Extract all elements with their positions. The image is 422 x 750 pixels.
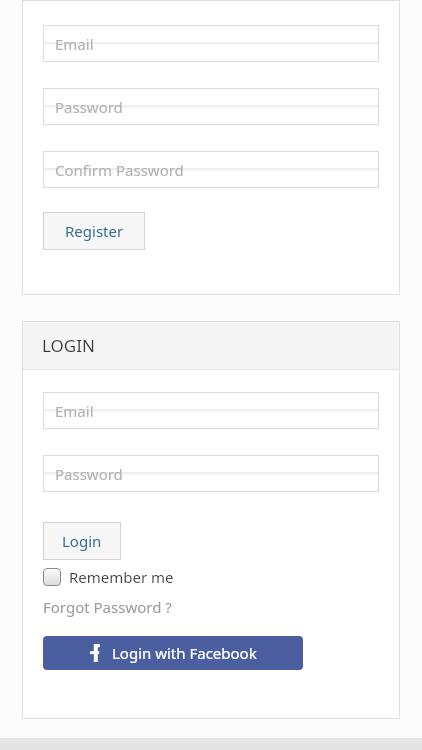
button[interactable]: Forgot Password ? <box>43 597 172 617</box>
staticText: Forgot Password ? <box>43 597 172 617</box>
button[interactable]: Register <box>43 212 145 250</box>
staticText: Confirm Password <box>55 160 184 180</box>
button[interactable]: Confirm Password <box>43 151 379 188</box>
staticText: Register <box>65 221 124 241</box>
button[interactable]: Password <box>43 88 379 125</box>
button[interactable]: Email <box>43 25 379 62</box>
button[interactable]: Facebook <box>43 636 303 670</box>
staticText: Login with Facebook <box>112 643 257 663</box>
staticText: Login <box>62 531 102 551</box>
staticText: Email <box>55 401 94 421</box>
staticText: Password <box>55 97 123 117</box>
staticText: Remember me <box>69 567 174 587</box>
button[interactable]: Remember me <box>43 567 174 587</box>
staticText: Password <box>55 464 123 484</box>
button[interactable]: Password <box>43 455 379 492</box>
button[interactable]: Email <box>43 392 379 429</box>
staticText: Email <box>55 34 94 54</box>
staticText: LOGIN <box>42 334 95 357</box>
button[interactable]: Login <box>43 522 121 560</box>
other: Facebook <box>90 644 100 662</box>
